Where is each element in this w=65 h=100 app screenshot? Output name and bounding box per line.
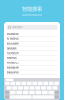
button[interactable]: 相关文档资料 <box>4 41 60 46</box>
button[interactable]: 搜索关键词 <box>4 22 60 32</box>
button[interactable]: 常用功能入口 <box>4 61 60 65</box>
staticText: 查看全部内容 <box>7 71 19 74</box>
button[interactable]: 历史浏览记录 <box>4 51 60 56</box>
staticText: 搜索关键词 <box>12 26 22 29</box>
staticText: 快速查找您需要的内容 <box>22 14 42 16</box>
staticText: 热门推荐内容 <box>7 37 19 40</box>
staticText: 推荐给你的 <box>7 56 17 59</box>
button[interactable]: 热门推荐内容 <box>4 37 60 41</box>
staticText: 常用功能入口 <box>7 61 19 64</box>
button[interactable]: 更多搜索结果 <box>4 65 60 70</box>
staticText: 最近搜索结果 <box>7 32 19 35</box>
staticText: 智能搜索 <box>22 6 42 12</box>
staticText: 更多搜索结果 <box>7 66 19 69</box>
staticText: 我的收藏夹 <box>7 47 17 50</box>
button[interactable]: 查看全部内容 <box>4 70 60 75</box>
button[interactable]: 我的收藏夹 <box>4 46 60 51</box>
staticText: 历史浏览记录 <box>7 52 19 55</box>
staticText: 相关文档资料 <box>7 42 19 45</box>
button[interactable]: 最近搜索结果 <box>4 32 60 37</box>
button[interactable]: 推荐给你的 <box>4 56 60 61</box>
